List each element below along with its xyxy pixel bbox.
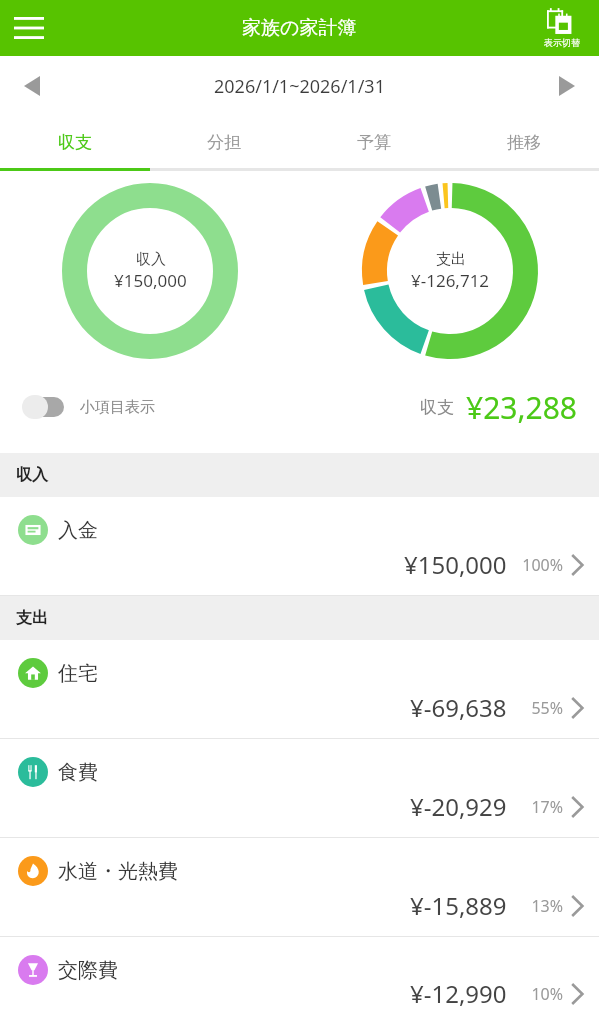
button[interactable]: 水道・光熱費 (0, 838, 599, 937)
button[interactable]: 交際費 (0, 937, 599, 1024)
staticText: ¥23,288 (466, 387, 577, 428)
staticText: 収入 (136, 250, 166, 269)
button[interactable]: Menu (0, 0, 58, 56)
staticText: 予算 (357, 132, 391, 153)
staticText: 分担 (207, 132, 241, 153)
staticText: 推移 (507, 132, 541, 153)
staticText: ¥150,000 (404, 548, 507, 581)
staticText: 住宅 (58, 661, 98, 686)
staticText: ¥-15,889 (410, 889, 507, 922)
staticText: 17% (517, 796, 563, 818)
staticText: 収支 (420, 397, 454, 418)
staticText: 100% (517, 554, 563, 576)
staticText: ¥-69,638 (410, 691, 507, 724)
button[interactable]: Next period (535, 56, 599, 116)
staticText: 10% (517, 983, 563, 1005)
button[interactable]: 予算 (299, 116, 449, 168)
button[interactable]: 食費 (0, 739, 599, 838)
staticText: 2026/1/1~2026/1/31 (214, 74, 385, 99)
staticText: 55% (517, 697, 563, 719)
button[interactable]: 入金 (0, 497, 599, 596)
staticText: 食費 (58, 760, 98, 785)
staticText: 小項目表示 (80, 398, 155, 417)
staticText: 入金 (58, 518, 98, 543)
staticText: 支出 (436, 250, 466, 269)
staticText: ¥150,000 (114, 269, 187, 292)
button[interactable]: 推移 (449, 116, 599, 168)
button[interactable]: 分担 (149, 116, 299, 168)
staticText: 13% (517, 895, 563, 917)
staticText: 支出 (16, 608, 48, 628)
staticText: ¥-20,929 (410, 790, 507, 823)
staticText: 表示切替 (544, 37, 580, 48)
staticText: 交際費 (58, 958, 118, 983)
button[interactable]: 収支 (0, 116, 149, 168)
staticText: ¥-126,712 (411, 269, 490, 292)
button[interactable]: 小項目表示 (22, 395, 155, 419)
staticText: 家族の家計簿 (242, 16, 357, 40)
staticText: 収入 (16, 465, 48, 485)
button[interactable]: 住宅 (0, 640, 599, 739)
button[interactable]: 表示切替 (525, 0, 599, 56)
button[interactable]: Previous period (0, 56, 64, 116)
staticText: ¥-12,990 (410, 977, 507, 1010)
staticText: 収支 (58, 132, 92, 153)
staticText: 水道・光熱費 (58, 859, 178, 884)
